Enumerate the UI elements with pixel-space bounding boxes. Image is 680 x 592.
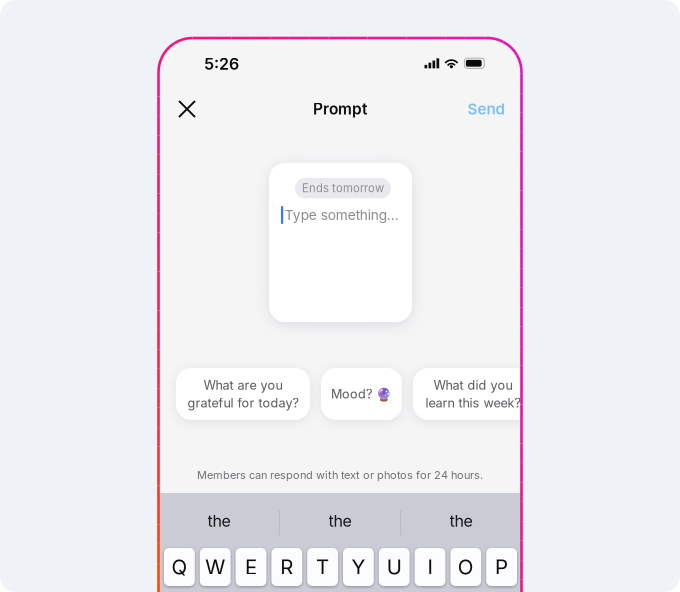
button[interactable]: W [200,548,231,586]
button[interactable]: I [415,548,445,586]
button[interactable]: Send [434,92,504,126]
staticText: the [449,512,472,530]
staticText: What did you [433,378,512,392]
staticText: Mood? 🔮 [331,386,392,401]
button[interactable]: Q [164,548,195,586]
button[interactable]: U [379,548,410,586]
staticText: What are you [203,378,282,392]
staticText: learn this week? [425,395,520,410]
button[interactable]: What did you [413,368,533,420]
staticText: U [387,555,402,579]
button[interactable]: Mood? 🔮 [321,368,402,420]
staticText: W [205,555,225,579]
staticText: P [495,555,508,579]
button[interactable]: O [450,548,481,586]
staticText: Y [351,555,365,579]
button[interactable]: E [236,548,266,586]
button[interactable]: P [486,548,517,586]
staticText: the [207,512,230,530]
staticText: Q [171,555,187,579]
staticText: R [280,555,293,579]
button[interactable]: R [271,548,302,586]
staticText: 5:26 [204,55,239,73]
staticText: I [427,555,432,579]
staticText: Ends tomorrow [302,181,384,195]
button[interactable]: Close [167,92,207,126]
button[interactable]: T [307,548,338,586]
staticText: Type something... [285,207,399,223]
staticText: Members can respond with text or photos … [197,468,483,481]
staticText: grateful for today? [187,395,298,410]
button[interactable]: What are you [176,368,310,420]
staticText: the [328,512,351,530]
staticText: Prompt [313,100,367,118]
staticText: E [245,555,257,579]
staticText: O [458,555,474,579]
staticText: T [316,555,329,579]
button[interactable]: Y [343,548,374,586]
staticText: Send [467,100,504,118]
